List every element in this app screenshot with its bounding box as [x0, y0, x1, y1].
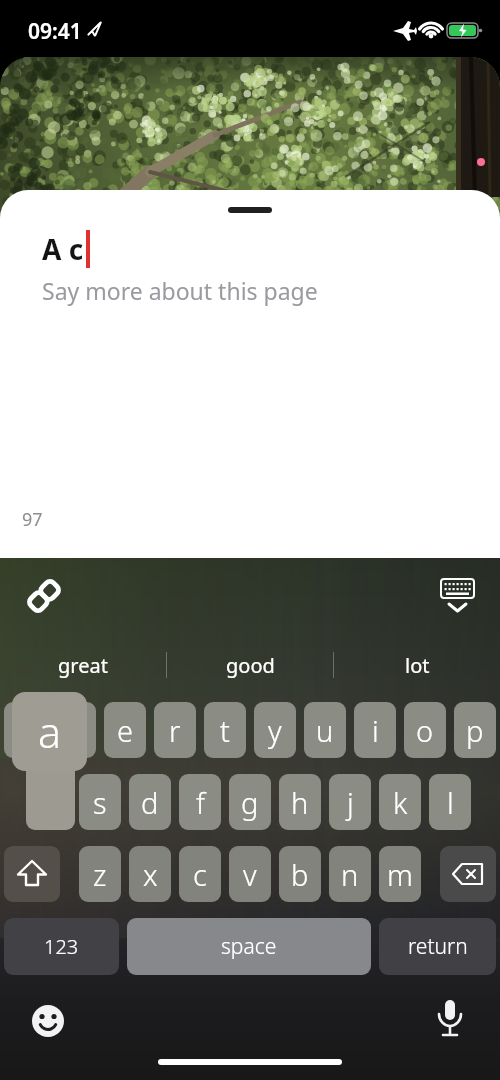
staticText: return: [408, 932, 468, 961]
button[interactable]: return: [379, 918, 496, 975]
button[interactable]: c: [179, 846, 221, 902]
staticText: f: [196, 783, 205, 822]
staticText: r: [169, 711, 181, 750]
staticText: t: [220, 711, 230, 750]
button[interactable]: m: [379, 846, 421, 902]
button[interactable]: good: [167, 640, 333, 690]
staticText: 123: [44, 933, 79, 960]
button[interactable]: lot: [334, 640, 500, 690]
staticText: o: [416, 711, 434, 750]
staticText: h: [291, 783, 309, 822]
staticText: e: [117, 711, 134, 750]
staticText: z: [93, 855, 107, 894]
button[interactable]: [30, 1003, 66, 1039]
button[interactable]: [440, 846, 496, 902]
staticText: good: [226, 652, 275, 679]
staticText: b: [291, 855, 309, 894]
staticText: d: [141, 783, 159, 822]
staticText: p: [466, 711, 484, 750]
button[interactable]: y: [254, 702, 296, 758]
button[interactable]: h: [279, 774, 321, 830]
button[interactable]: w: [54, 702, 96, 758]
button[interactable]: n: [329, 846, 371, 902]
button[interactable]: v: [229, 846, 271, 902]
button[interactable]: g: [229, 774, 271, 830]
button[interactable]: [24, 574, 64, 618]
button[interactable]: r: [154, 702, 196, 758]
staticText: x: [143, 855, 158, 894]
staticText: Say more about this page: [42, 275, 318, 306]
button[interactable]: s: [79, 774, 121, 830]
staticText: 09:41: [28, 17, 82, 46]
staticText: i: [372, 711, 379, 750]
staticText: lot: [405, 652, 430, 679]
staticText: c: [193, 855, 207, 894]
button[interactable]: 123: [4, 918, 119, 975]
button[interactable]: o: [404, 702, 446, 758]
button[interactable]: u: [304, 702, 346, 758]
staticText: k: [393, 783, 408, 822]
staticText: s: [93, 783, 107, 822]
staticText: 97: [22, 507, 43, 532]
staticText: A c: [42, 230, 84, 268]
button[interactable]: b: [279, 846, 321, 902]
staticText: l: [447, 783, 454, 822]
staticText: n: [341, 855, 359, 894]
staticText: y: [268, 711, 282, 750]
button[interactable]: e: [104, 702, 146, 758]
button[interactable]: z: [79, 846, 121, 902]
button[interactable]: d: [129, 774, 171, 830]
staticText: u: [316, 711, 334, 750]
button[interactable]: t: [204, 702, 246, 758]
staticText: g: [241, 783, 259, 822]
staticText: a: [38, 702, 62, 761]
button[interactable]: q: [4, 702, 46, 758]
staticText: space: [221, 932, 277, 961]
button[interactable]: k: [379, 774, 421, 830]
button[interactable]: i: [354, 702, 396, 758]
button[interactable]: [4, 846, 60, 902]
button[interactable]: j: [329, 774, 371, 830]
staticText: v: [243, 855, 257, 894]
staticText: great: [58, 652, 108, 679]
button[interactable]: [432, 998, 468, 1044]
button[interactable]: space: [127, 918, 371, 975]
button[interactable]: x: [129, 846, 171, 902]
button[interactable]: great: [0, 640, 166, 690]
button[interactable]: l: [429, 774, 471, 830]
button[interactable]: f: [179, 774, 221, 830]
button[interactable]: p: [454, 702, 496, 758]
staticText: m: [387, 855, 413, 894]
button[interactable]: [434, 574, 482, 620]
staticText: j: [347, 783, 354, 822]
